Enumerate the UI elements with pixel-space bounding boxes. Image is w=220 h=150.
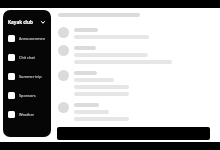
other: Expand server menu <box>40 19 46 25</box>
button[interactable] <box>58 45 211 64</box>
button[interactable]: Sponsors <box>8 89 46 102</box>
button[interactable]: Kayak club <box>8 17 46 26</box>
staticText: Summer trip <box>19 74 42 79</box>
button[interactable] <box>58 102 211 121</box>
button[interactable] <box>58 27 211 39</box>
button[interactable]: Announcements <box>8 32 46 45</box>
button[interactable]: Message input <box>57 127 210 140</box>
staticText: Weather <box>19 112 35 117</box>
staticText: Chit chat <box>19 55 35 60</box>
button[interactable]: Summer trip <box>8 70 46 83</box>
button[interactable]: Weather <box>8 108 46 121</box>
staticText: Sponsors <box>19 93 36 98</box>
staticText: Kayak club <box>8 19 33 25</box>
button[interactable] <box>58 70 211 96</box>
button[interactable]: Chit chat <box>8 51 46 64</box>
staticText: Announcements <box>19 36 46 41</box>
